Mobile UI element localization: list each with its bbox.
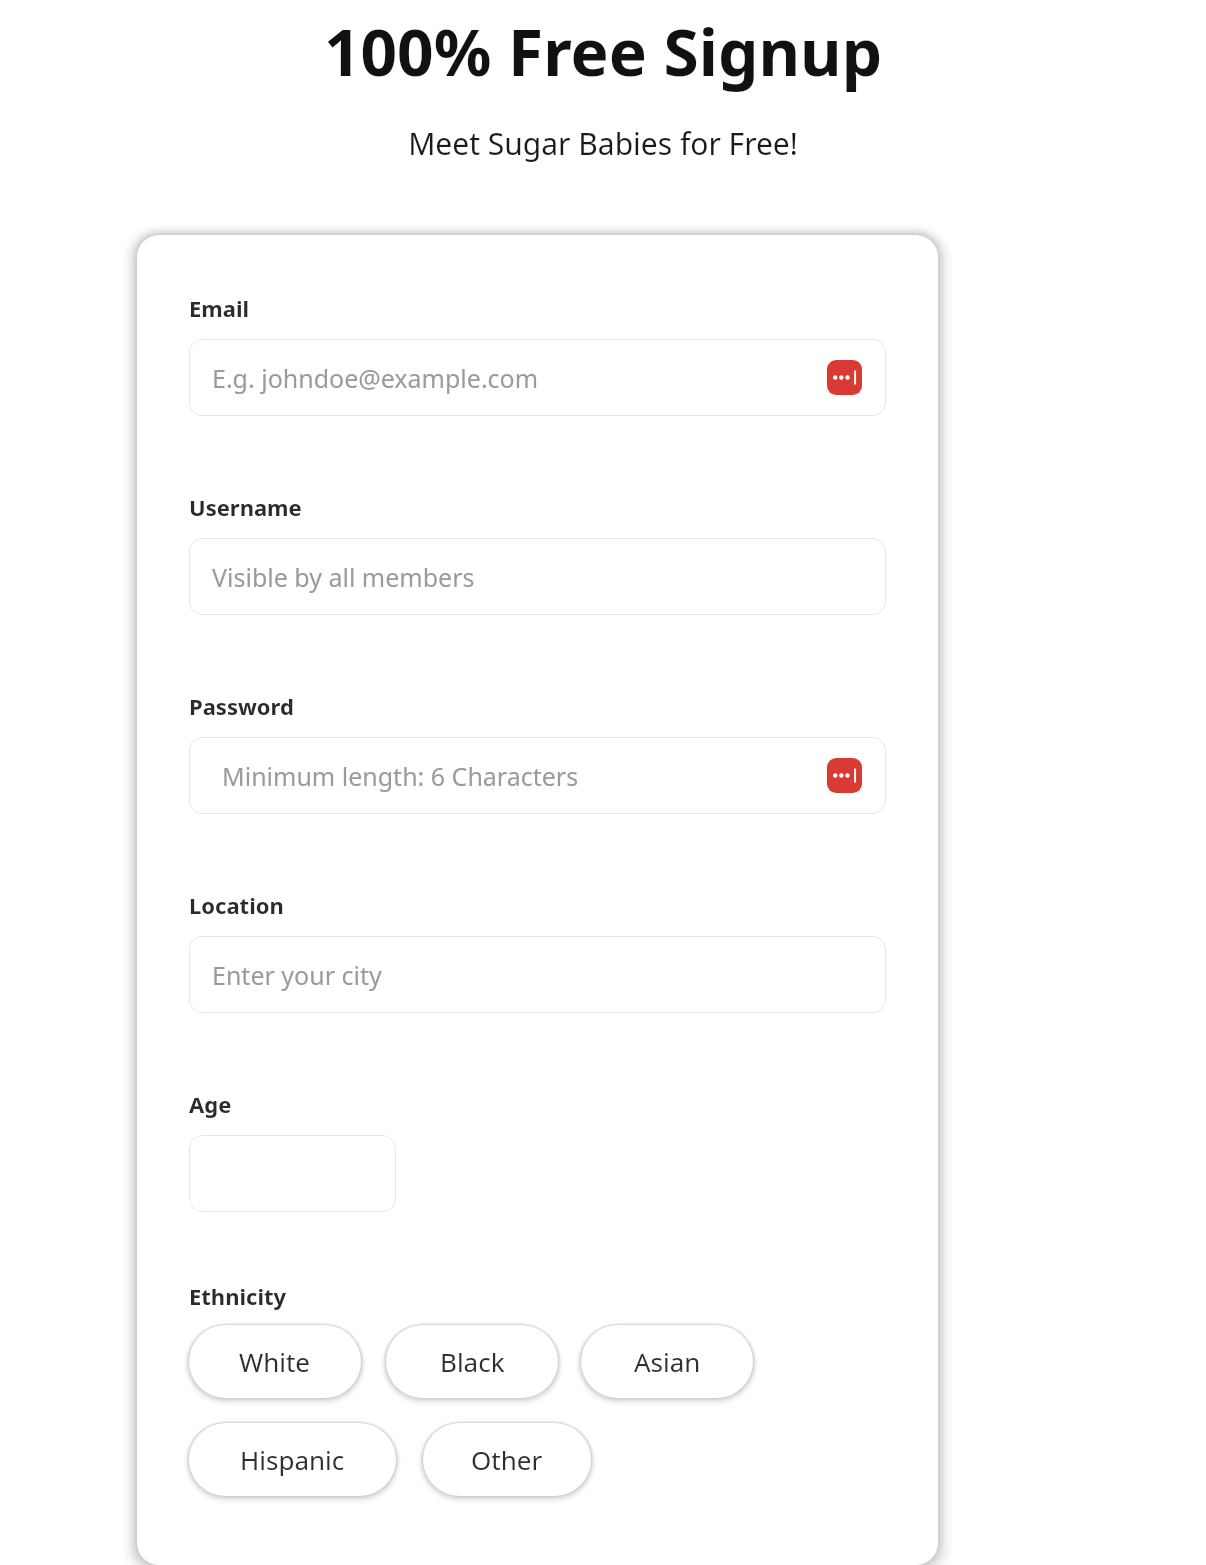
button[interactable]: Other <box>423 1423 591 1496</box>
button[interactable]: Asian <box>581 1325 753 1398</box>
button[interactable]: Visible by all members <box>189 538 886 615</box>
staticText: Minimum length: 6 Characters <box>222 759 579 793</box>
button[interactable]: Autofill <box>827 758 862 793</box>
staticText: Password <box>189 691 294 721</box>
staticText: Location <box>189 890 284 920</box>
button[interactable] <box>189 1135 396 1212</box>
staticText: Asian <box>634 1344 701 1379</box>
staticText: Black <box>440 1344 505 1379</box>
staticText: Hispanic <box>240 1442 345 1477</box>
button[interactable]: Hispanic <box>189 1423 396 1496</box>
staticText: White <box>239 1344 311 1379</box>
button[interactable]: Autofill <box>827 360 862 395</box>
staticText: Email <box>189 293 250 323</box>
button[interactable]: E.g. johndoe@example.com <box>189 339 886 416</box>
staticText: Visible by all members <box>212 560 475 594</box>
staticText: Other <box>471 1442 543 1477</box>
staticText: Meet Sugar Babies for Free! <box>0 123 1206 164</box>
button[interactable]: Black <box>386 1325 558 1398</box>
staticText: Enter your city <box>212 958 382 992</box>
staticText: Age <box>189 1089 232 1119</box>
button[interactable]: Enter your city <box>189 936 886 1013</box>
staticText: Ethnicity <box>189 1281 287 1311</box>
staticText: E.g. johndoe@example.com <box>212 361 539 395</box>
staticText: Username <box>189 492 302 522</box>
button[interactable]: Minimum length: 6 Characters <box>189 737 886 814</box>
button[interactable]: White <box>189 1325 361 1398</box>
staticText: 100% Free Signup <box>0 8 1206 95</box>
